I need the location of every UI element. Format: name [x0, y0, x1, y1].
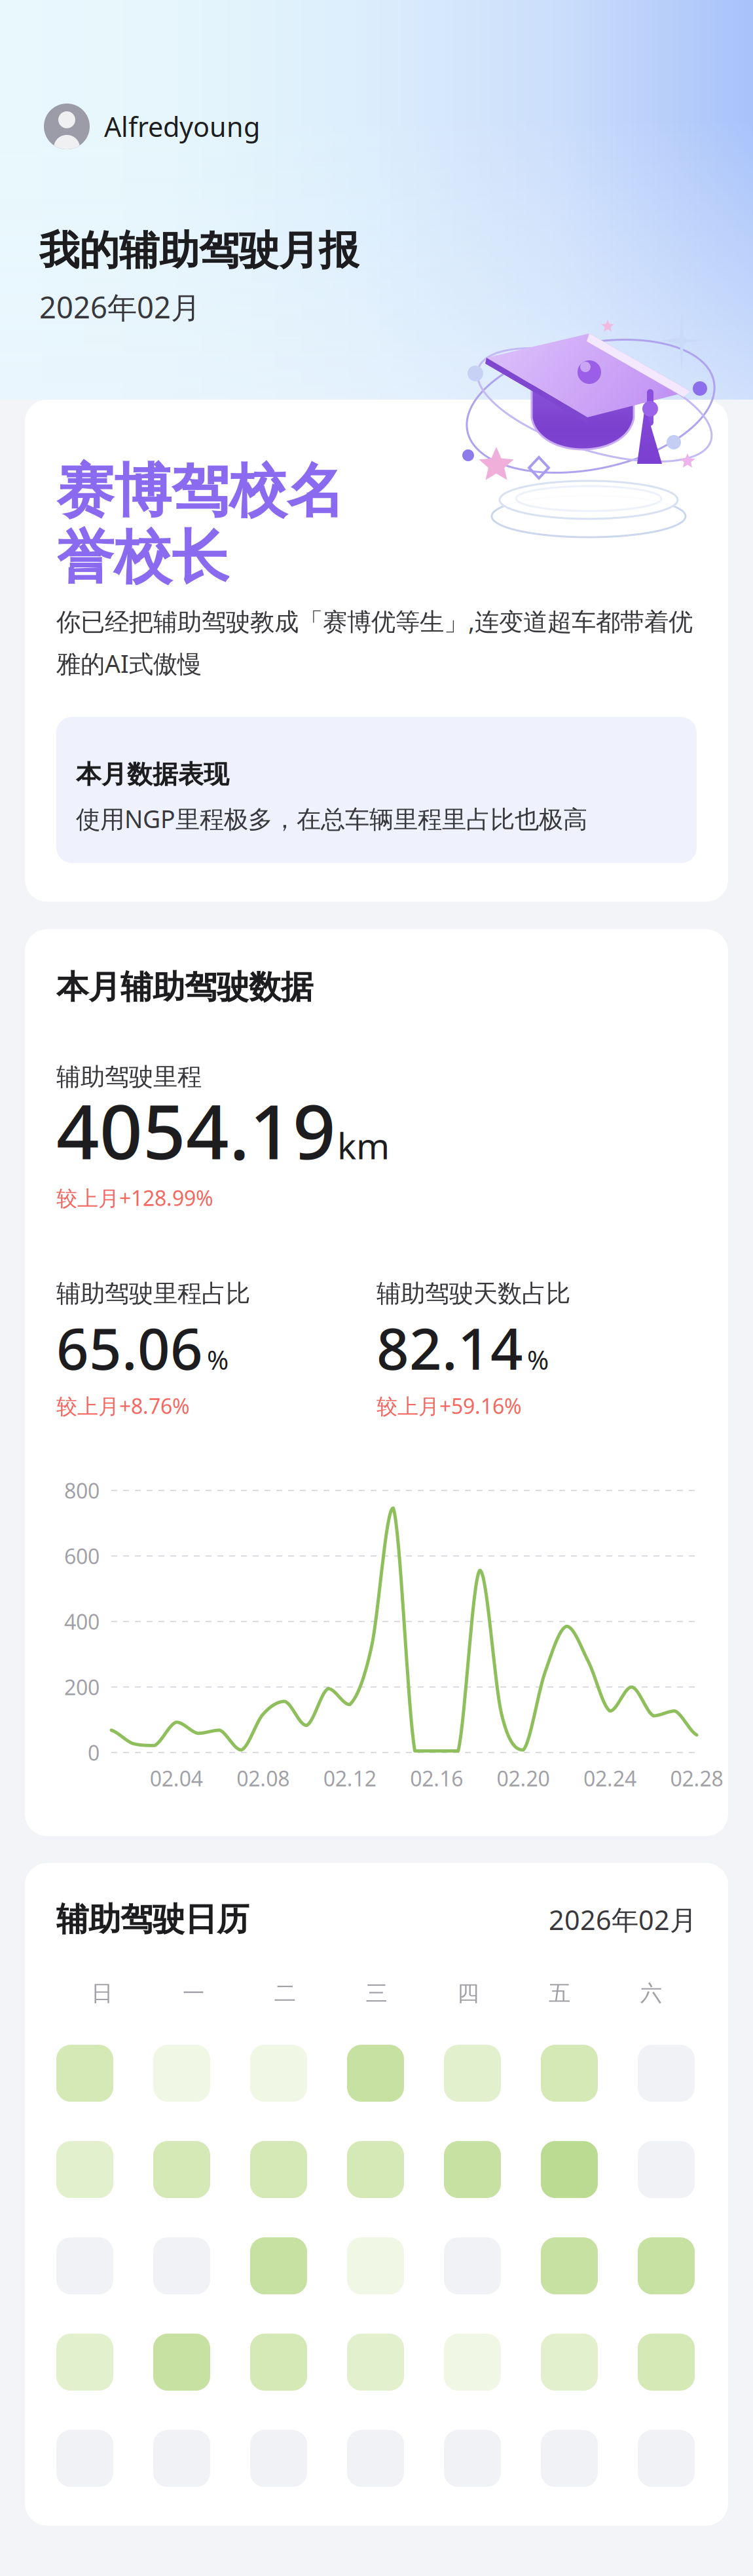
- staticText: 辅助驾驶里程占比: [56, 1279, 250, 1309]
- staticText: 400: [64, 1608, 100, 1635]
- staticText: 五: [549, 1980, 570, 2007]
- staticText: 本月数据表现: [76, 759, 229, 790]
- staticText: 较上月+59.16%: [376, 1392, 522, 1420]
- staticText: 02.20: [497, 1764, 550, 1792]
- staticText: 辅助驾驶天数占比: [376, 1279, 570, 1309]
- staticText: 一: [183, 1980, 204, 2007]
- staticText: 600: [64, 1542, 100, 1570]
- staticText: 200: [64, 1673, 100, 1701]
- staticText: 02.08: [237, 1764, 290, 1792]
- staticText: Alfredyoung: [104, 108, 260, 144]
- staticText: 本月辅助驾驶数据: [56, 967, 313, 1007]
- staticText: 2026年02月: [549, 1901, 697, 1937]
- staticText: 02.24: [583, 1764, 637, 1792]
- staticText: 4054.19: [56, 1080, 336, 1180]
- staticText: 02.28: [670, 1764, 723, 1792]
- staticText: 82.14: [376, 1310, 523, 1385]
- button[interactable]: Alfredyoung: [44, 104, 260, 149]
- staticText: 02.12: [323, 1764, 376, 1792]
- staticText: 三: [366, 1980, 387, 2007]
- staticText: 0: [88, 1739, 100, 1766]
- staticText: 六: [640, 1980, 662, 2007]
- staticText: 65.06: [56, 1310, 203, 1385]
- staticText: 我的辅助驾驶月报: [39, 226, 359, 275]
- staticText: 辅助驾驶里程: [56, 1062, 202, 1092]
- staticText: 使用NGP里程极多，在总车辆里程里占比也极高: [76, 802, 587, 835]
- staticText: 赛博驾校名 誉校长: [56, 456, 344, 593]
- staticText: 辅助驾驶日历: [56, 1900, 249, 1939]
- staticText: %: [527, 1342, 549, 1377]
- staticText: 较上月+128.99%: [56, 1184, 213, 1212]
- staticText: 800: [64, 1477, 100, 1504]
- staticText: 02.04: [150, 1764, 203, 1792]
- staticText: 二: [274, 1980, 296, 2007]
- staticText: 02.16: [410, 1764, 463, 1792]
- staticText: 日: [91, 1980, 113, 2007]
- staticText: 2026年02月: [39, 287, 200, 327]
- staticText: %: [207, 1342, 229, 1377]
- staticText: 四: [457, 1980, 479, 2007]
- staticText: 你已经把辅助驾驶教成「赛博优等生」,连变道超车都带着优雅的AI式傲慢: [56, 605, 693, 680]
- staticText: 较上月+8.76%: [56, 1392, 190, 1420]
- staticText: km: [337, 1122, 390, 1169]
